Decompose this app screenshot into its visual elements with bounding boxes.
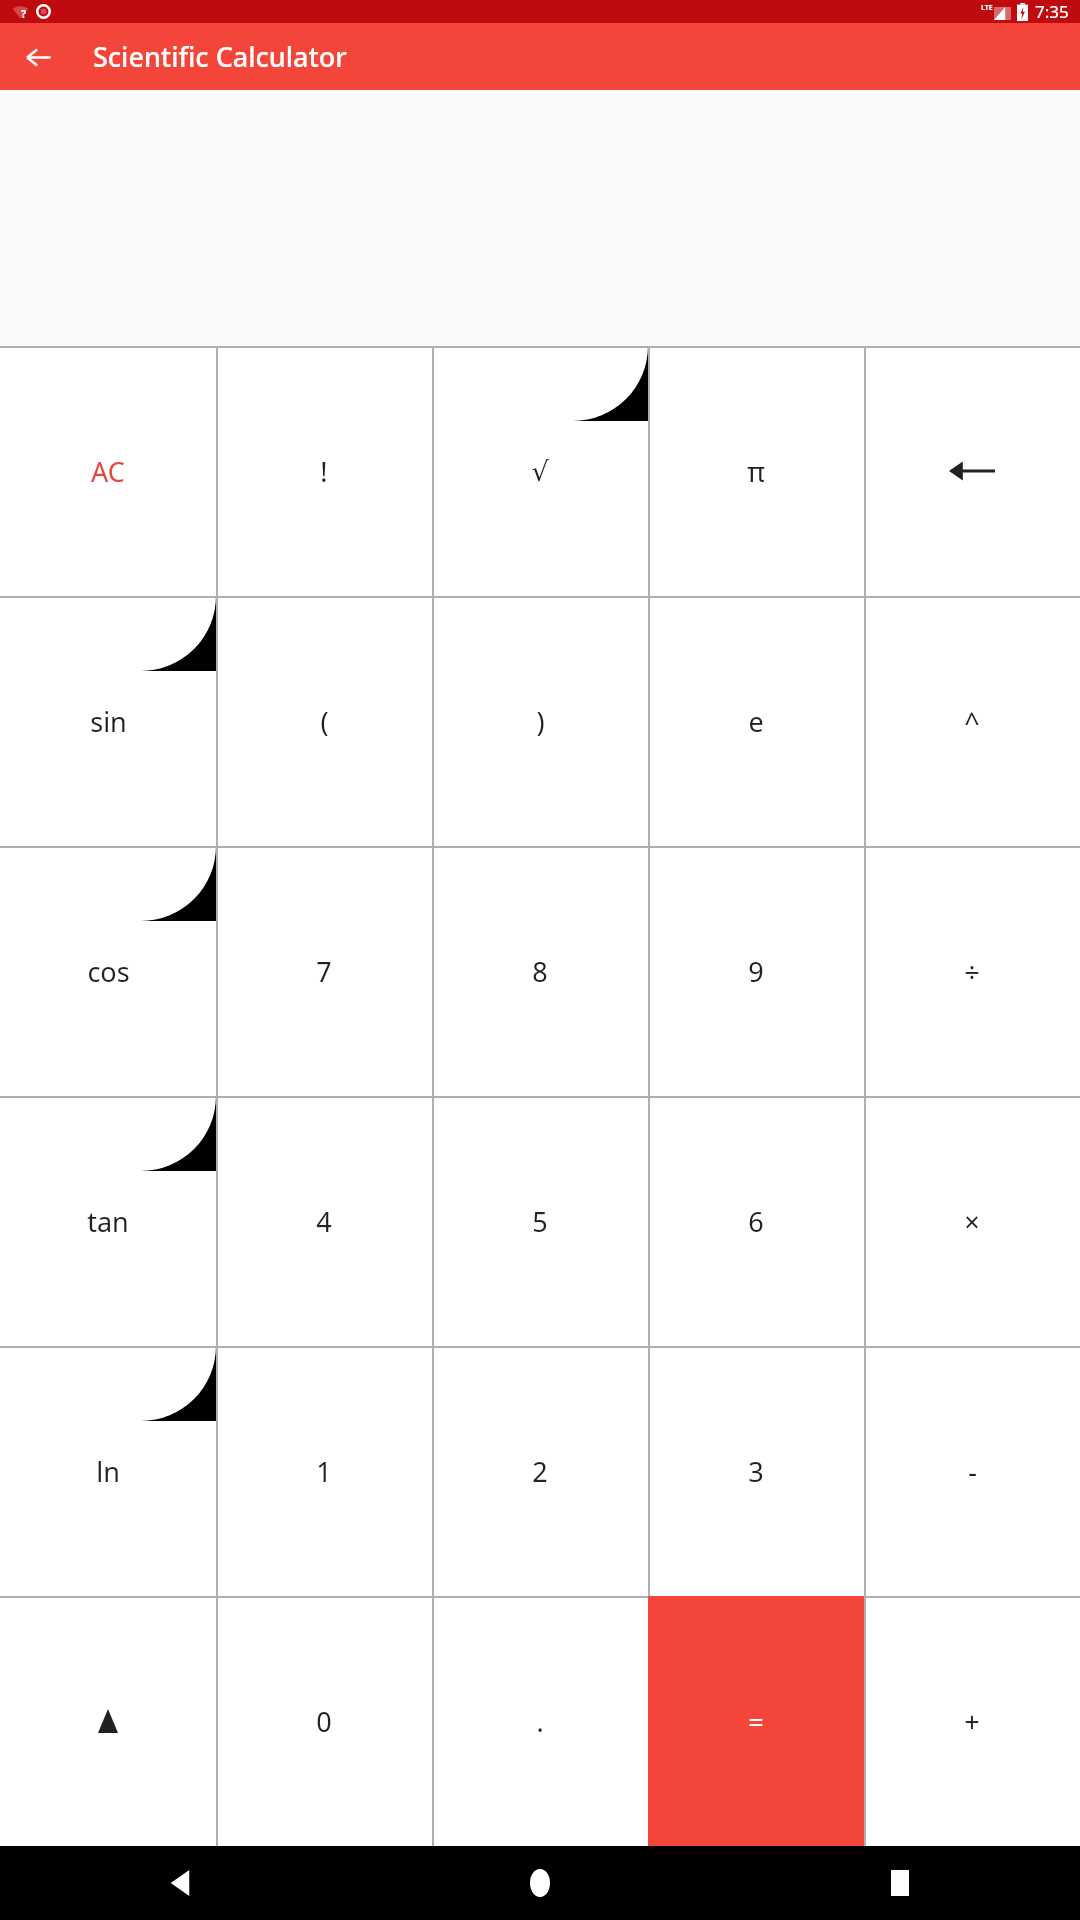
- staticText: +: [964, 1703, 980, 1740]
- button[interactable]: √: [432, 346, 648, 596]
- button[interactable]: -: [864, 1346, 1080, 1596]
- staticText: ?: [21, 6, 27, 21]
- staticText: -: [968, 1453, 977, 1490]
- button[interactable]: ÷: [864, 846, 1080, 1096]
- staticText: (: [320, 703, 329, 740]
- button[interactable]: ^: [864, 596, 1080, 846]
- button[interactable]: 4: [216, 1096, 432, 1346]
- staticText: 7: [316, 953, 332, 990]
- staticText: 1: [316, 1453, 332, 1490]
- button[interactable]: Recent apps: [720, 1846, 1080, 1920]
- button[interactable]: 9: [648, 846, 864, 1096]
- button[interactable]: Back: [14, 33, 62, 81]
- staticText: sin: [90, 703, 127, 740]
- staticText: 3: [748, 1453, 764, 1490]
- staticText: 2: [532, 1453, 548, 1490]
- button[interactable]: e: [648, 596, 864, 846]
- button[interactable]: 6: [648, 1096, 864, 1346]
- button[interactable]: 5: [432, 1096, 648, 1346]
- staticText: e: [748, 703, 764, 740]
- button[interactable]: 0: [216, 1596, 432, 1846]
- staticText: Scientific Calculator: [93, 38, 347, 75]
- button[interactable]: ln: [0, 1346, 216, 1596]
- staticText: 0: [316, 1703, 332, 1740]
- button[interactable]: ×: [864, 1096, 1080, 1346]
- staticText: 4: [316, 1203, 332, 1240]
- staticText: 7:35: [1035, 0, 1069, 23]
- button[interactable]: !: [216, 346, 432, 596]
- staticText: =: [748, 1703, 764, 1740]
- button[interactable]: 2: [432, 1346, 648, 1596]
- button[interactable]: Expand: [0, 1596, 216, 1846]
- button[interactable]: Home: [360, 1846, 720, 1920]
- staticText: !: [320, 453, 328, 490]
- button[interactable]: 3: [648, 1346, 864, 1596]
- button[interactable]: sin: [0, 596, 216, 846]
- button[interactable]: tan: [0, 1096, 216, 1346]
- staticText: √: [531, 456, 549, 487]
- button[interactable]: Backspace: [864, 346, 1080, 596]
- button[interactable]: AC: [0, 346, 216, 596]
- button[interactable]: π: [648, 346, 864, 596]
- staticText: ÷: [964, 953, 980, 990]
- staticText: AC: [91, 453, 125, 490]
- staticText: cos: [87, 953, 130, 990]
- button[interactable]: ): [432, 596, 648, 846]
- button[interactable]: Back: [0, 1846, 360, 1920]
- button[interactable]: (: [216, 596, 432, 846]
- staticText: tan: [87, 1203, 129, 1240]
- staticText: π: [747, 453, 765, 490]
- button[interactable]: 1: [216, 1346, 432, 1596]
- button[interactable]: =: [648, 1596, 864, 1846]
- staticText: ln: [96, 1453, 120, 1490]
- button[interactable]: .: [432, 1596, 648, 1846]
- staticText: 6: [748, 1203, 764, 1240]
- button[interactable]: cos: [0, 846, 216, 1096]
- staticText: 9: [748, 953, 764, 990]
- staticText: ×: [964, 1203, 980, 1240]
- staticText: ^: [964, 703, 980, 740]
- staticText: 5: [532, 1203, 548, 1240]
- button[interactable]: 8: [432, 846, 648, 1096]
- staticText: ): [536, 703, 545, 740]
- button[interactable]: 7: [216, 846, 432, 1096]
- button[interactable]: +: [864, 1596, 1080, 1846]
- staticText: .: [536, 1703, 544, 1740]
- staticText: LTE: [981, 3, 993, 13]
- staticText: 8: [532, 953, 548, 990]
